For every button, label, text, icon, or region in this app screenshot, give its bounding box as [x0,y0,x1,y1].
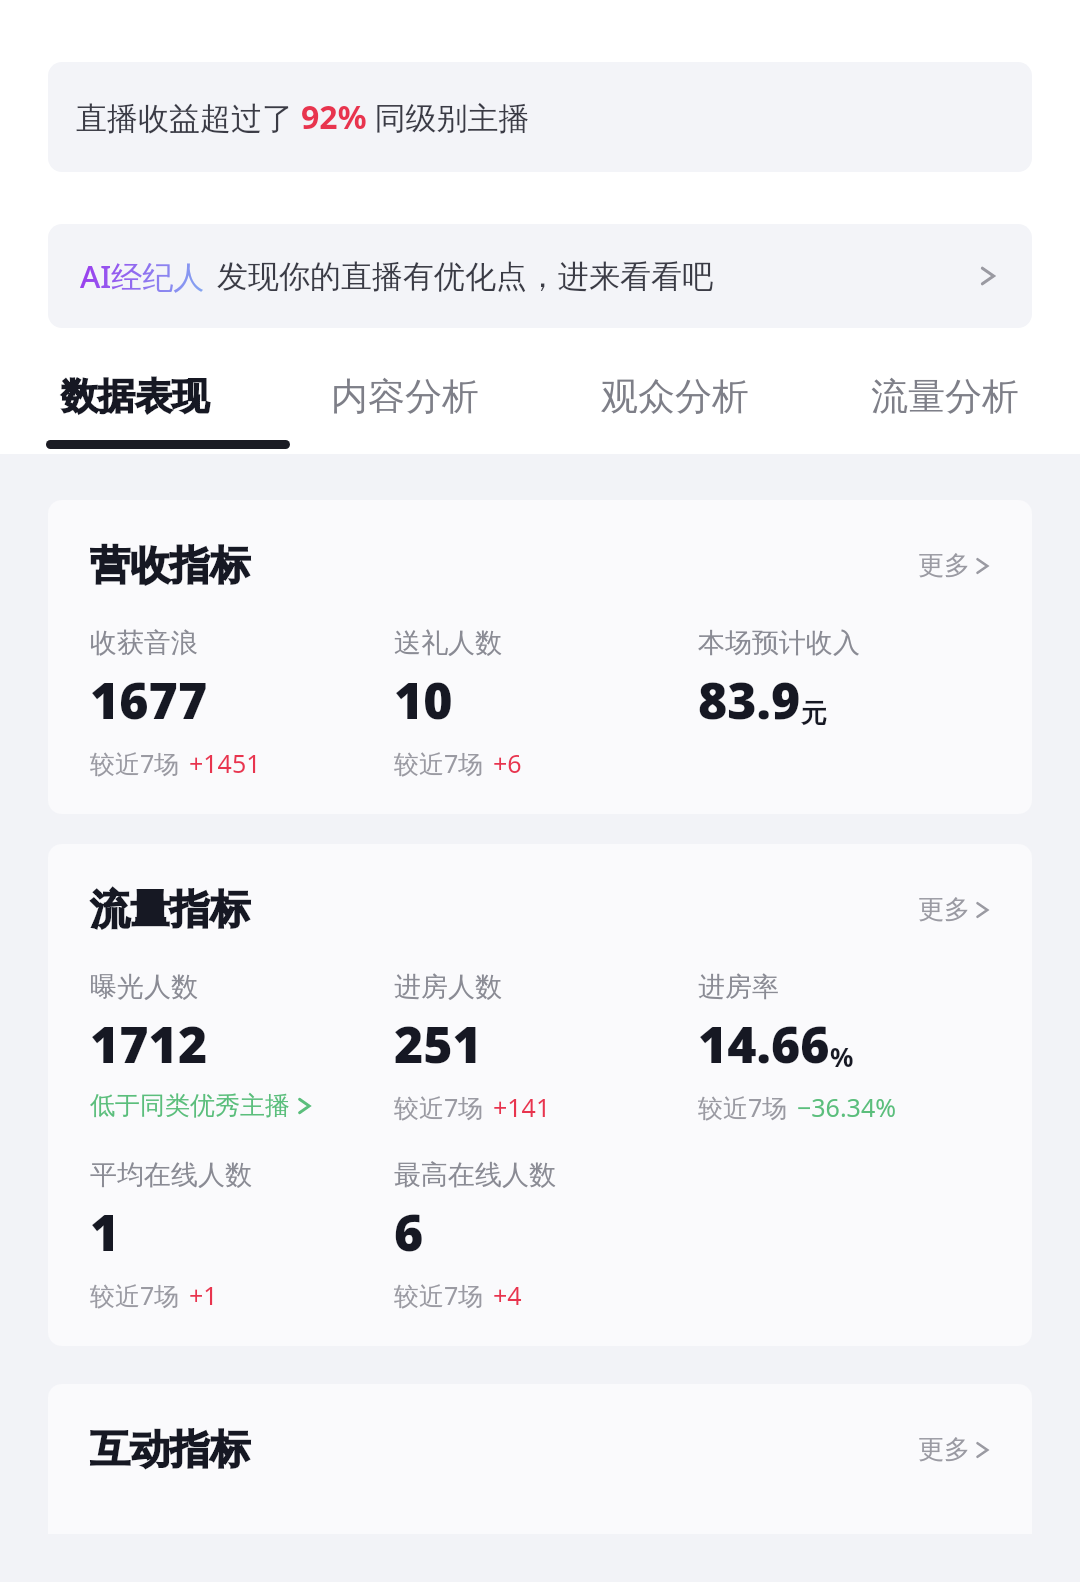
staticText: 流量指标 [90,884,250,934]
staticText: 元 [801,697,827,730]
button[interactable]: 更多 [914,889,1002,930]
button[interactable]: 数据表现 [0,352,270,440]
staticText: 10 [394,666,453,734]
staticText: 曝光人数 [90,970,198,1004]
staticText: 送礼人数 [394,626,502,660]
staticText: AI经纪人 [80,255,205,297]
staticText: 1 [90,1198,120,1266]
button[interactable]: 低于同类优秀主播 [90,1090,320,1121]
staticText: 较近7场 [698,1090,788,1124]
staticText: 流量分析 [871,373,1019,420]
staticText: +1451 [189,746,261,780]
button[interactable]: 内容分析 [270,352,540,440]
staticText: 更多 [918,549,970,582]
other: 查看详情 [976,261,1006,291]
staticText: 收获音浪 [90,626,198,660]
staticText: 内容分析 [331,373,479,420]
staticText: 低于同类优秀主播 [90,1090,290,1121]
button[interactable]: 更多 [914,545,1002,586]
staticText: 更多 [918,1433,970,1466]
button[interactable]: 流量分析 [810,352,1080,440]
button[interactable]: AI经纪人 [48,224,1032,328]
staticText: 6 [394,1198,424,1266]
staticText: 较近7场 [90,1278,180,1312]
staticText: +4 [493,1278,522,1312]
staticText: 83.9 [698,666,801,734]
staticText: −36.34% [797,1090,896,1124]
staticText: +1 [189,1278,218,1312]
staticText: 1677 [90,666,208,734]
staticText: 1712 [90,1010,208,1078]
staticText: % [830,1039,854,1074]
staticText: 较近7场 [394,1090,484,1124]
staticText: 14.66 [698,1010,830,1078]
staticText: 251 [394,1010,482,1078]
button[interactable]: 更多 [914,1429,1002,1470]
staticText: 本场预计收入 [698,626,860,660]
staticText: 营收指标 [90,540,250,590]
staticText: 较近7场 [394,1278,484,1312]
staticText: 发现你的直播有优化点，进来看看吧 [217,257,713,296]
staticText: 平均在线人数 [90,1158,252,1192]
staticText: 较近7场 [90,746,180,780]
staticText: 进房率 [698,970,779,1004]
staticText: 直播收益超过了 92% 同级别主播 [76,95,530,139]
staticText: 数据表现 [61,373,209,420]
staticText: 进房人数 [394,970,502,1004]
staticText: +6 [493,746,522,780]
staticText: 更多 [918,893,970,926]
staticText: +141 [493,1090,551,1124]
button[interactable]: 观众分析 [540,352,810,440]
button[interactable]: 直播收益超过了 92% 同级别主播 [48,62,1032,172]
staticText: 最高在线人数 [394,1158,556,1192]
staticText: 观众分析 [601,373,749,420]
staticText: 较近7场 [394,746,484,780]
staticText: 互动指标 [90,1424,250,1474]
